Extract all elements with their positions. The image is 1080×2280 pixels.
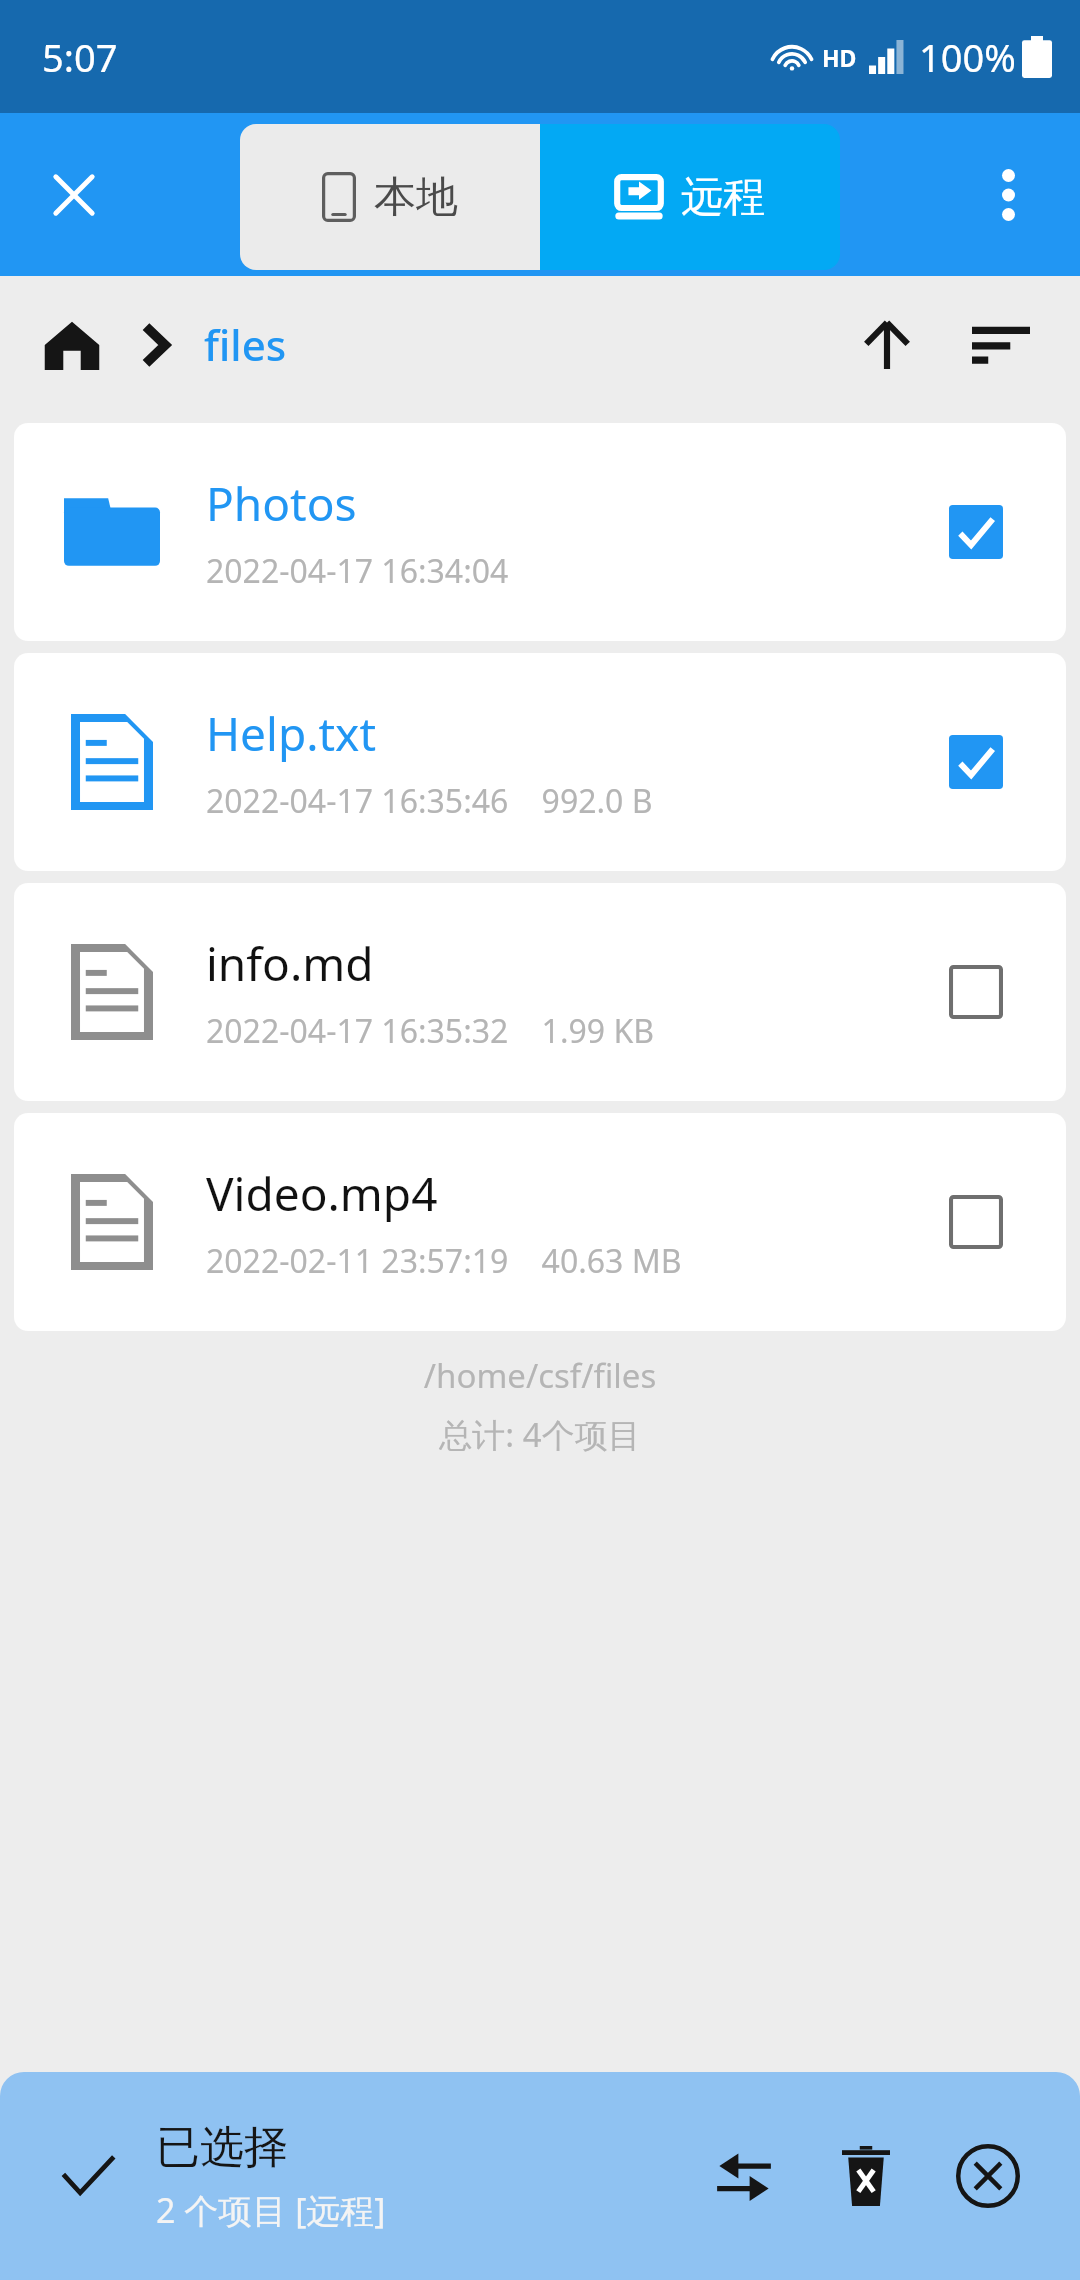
staticText: 2022-04-17 16:35:46 992.0 B: [206, 779, 653, 823]
staticText: 2022-02-11 23:57:19 40.63 MB: [206, 1239, 682, 1283]
staticText: info.md: [206, 932, 374, 995]
button[interactable]: Photos: [14, 423, 1066, 641]
staticText: 2022-04-17 16:34:04: [206, 549, 509, 593]
staticText: Photos: [206, 472, 357, 535]
button[interactable]: Sort: [952, 296, 1050, 394]
button[interactable]: Home: [30, 303, 114, 387]
button[interactable]: Delete: [816, 2126, 916, 2226]
staticText: files: [204, 316, 287, 373]
button[interactable]: 本地: [240, 124, 540, 270]
button[interactable]: info.md: [14, 883, 1066, 1101]
staticText: 总计: 4个项目: [0, 1412, 1080, 1457]
button[interactable]: Selected: [930, 716, 1022, 808]
button[interactable]: Close: [24, 145, 124, 245]
staticText: /home/csf/files: [0, 1353, 1080, 1398]
button[interactable]: Not selected: [930, 946, 1022, 1038]
button[interactable]: Help.txt: [14, 653, 1066, 871]
button[interactable]: Selected: [930, 486, 1022, 578]
button[interactable]: files: [200, 308, 291, 381]
staticText: 2 个项目 [远程]: [156, 2187, 386, 2233]
button[interactable]: Not selected: [930, 1176, 1022, 1268]
staticText: 已选择: [156, 2120, 288, 2175]
staticText: 100%: [919, 31, 1016, 83]
button[interactable]: More options: [958, 145, 1058, 245]
staticText: Help.txt: [206, 702, 377, 765]
other: Selection: [46, 2134, 130, 2218]
staticText: HD: [822, 42, 857, 73]
button[interactable]: Go up: [838, 296, 936, 394]
staticText: 2022-04-17 16:35:32 1.99 KB: [206, 1009, 655, 1053]
staticText: 远程: [681, 171, 765, 224]
staticText: Video.mp4: [206, 1162, 438, 1225]
staticText: 本地: [374, 171, 458, 224]
button[interactable]: Cancel selection: [938, 2126, 1038, 2226]
button[interactable]: Selection: [0, 2072, 1080, 2280]
button[interactable]: Video.mp4: [14, 1113, 1066, 1331]
staticText: 5:07: [42, 31, 118, 83]
button[interactable]: 远程: [540, 124, 840, 270]
button[interactable]: Transfer: [694, 2126, 794, 2226]
